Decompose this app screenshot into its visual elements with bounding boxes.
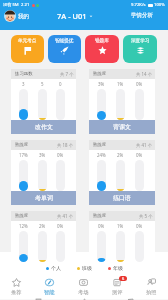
staticText: 改作文 <box>35 123 53 131</box>
other: Profile <box>4 10 16 22</box>
staticText: 班级 <box>82 265 92 271</box>
staticText: 共 14 个 <box>136 71 153 77</box>
staticText: 年级 <box>113 265 123 271</box>
staticText: 熟练度 <box>93 71 107 77</box>
button[interactable]: 6 <box>100 274 134 299</box>
staticText: 没有 5M <box>3 2 19 8</box>
button[interactable]: 7A - U01 <box>57 11 93 21</box>
button[interactable]: 学情分析 <box>131 12 153 19</box>
button[interactable]: 背课文 <box>89 120 155 134</box>
staticText: 智能提优 <box>55 38 74 44</box>
staticText: 0% <box>136 223 143 229</box>
button[interactable]: 考场 <box>66 274 100 299</box>
button[interactable]: 智能 <box>33 274 66 299</box>
button[interactable]: 错题库 <box>85 35 119 63</box>
staticText: 共 41 个 <box>57 213 74 219</box>
staticText: 练口语 <box>113 194 131 202</box>
staticText: 错题库 <box>95 38 109 44</box>
staticText: 3% <box>39 152 46 158</box>
staticText: 练习题数 <box>15 71 33 77</box>
staticText: 3 <box>22 81 25 87</box>
staticText: 考单词 <box>35 194 53 202</box>
staticText: 0 <box>59 81 62 87</box>
staticText: 6 <box>122 276 125 281</box>
staticText: 单元考点 <box>18 38 37 44</box>
staticText: 0% <box>136 152 143 158</box>
staticText: 智能 <box>44 289 55 296</box>
staticText: 17% <box>19 152 28 158</box>
button[interactable]: 练口语 <box>89 191 155 205</box>
staticText: 100% <box>154 2 165 8</box>
button[interactable]: 推荐 <box>0 274 33 299</box>
staticText: 12% <box>19 223 28 229</box>
staticText: 共 7 个 <box>60 71 74 77</box>
staticText: 24% <box>97 152 106 158</box>
staticText: 考场 <box>78 289 89 296</box>
button[interactable]: 智能提优 <box>48 35 81 63</box>
staticText: 共 5 个 <box>139 213 153 219</box>
button[interactable]: 拍照 <box>134 274 168 299</box>
button[interactable]: Home <box>76 299 92 300</box>
staticText: 0% <box>57 223 64 229</box>
staticText: 0% <box>98 223 105 229</box>
staticText: 测评 <box>112 289 123 296</box>
button[interactable]: 改作文 <box>11 120 76 134</box>
staticText: 2% <box>117 152 124 158</box>
staticText: 7A - U01 <box>57 11 87 21</box>
staticText: 1% <box>117 81 124 87</box>
button[interactable]: Recents <box>30 299 46 300</box>
staticText: 3% <box>98 81 105 87</box>
staticText: 共 18 个 <box>57 142 74 148</box>
staticText: 熟练度 <box>15 142 29 148</box>
staticText: 背课文 <box>113 123 131 131</box>
staticText: 2 21 <box>21 2 30 8</box>
staticText: 熟练度 <box>15 213 29 219</box>
staticText: 1% <box>117 223 124 229</box>
staticText: 熟练度 <box>93 213 107 219</box>
button[interactable]: 深度学习 <box>123 35 157 63</box>
button[interactable]: Back <box>122 299 138 300</box>
staticText: 共 41 个 <box>136 142 153 148</box>
staticText: 0% <box>136 81 143 87</box>
staticText: 拍照 <box>146 289 157 296</box>
staticText: 个人 <box>51 265 61 271</box>
button[interactable]: 考单词 <box>11 191 76 205</box>
button[interactable]: Profile <box>4 10 29 22</box>
button[interactable]: 单元考点 <box>11 35 44 63</box>
staticText: 5 <box>41 81 44 87</box>
staticText: 推荐 <box>11 289 22 296</box>
staticText: 0% <box>57 152 64 158</box>
staticText: 深度学习 <box>131 38 150 44</box>
staticText: 我的 <box>18 13 29 20</box>
staticText: 9.72K/s <box>131 2 146 8</box>
staticText: 2% <box>39 223 46 229</box>
staticText: 熟练度 <box>93 142 107 148</box>
